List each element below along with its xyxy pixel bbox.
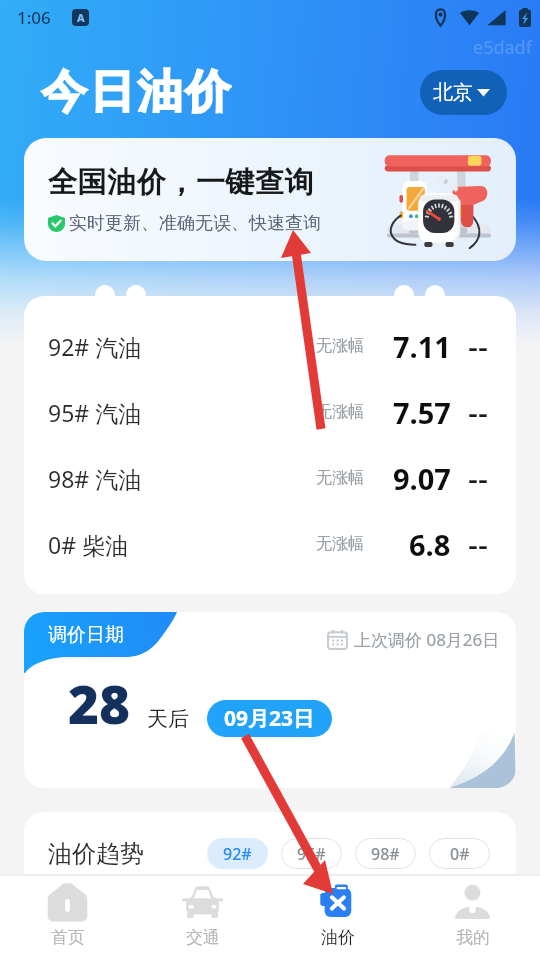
staticText: 我的 bbox=[456, 927, 490, 948]
button[interactable]: 全国油价，一键查询 bbox=[24, 138, 516, 261]
staticText: 09月23日 bbox=[224, 704, 315, 733]
button[interactable]: 95# 汽油 bbox=[48, 379, 492, 445]
button[interactable]: Home bbox=[0, 876, 135, 960]
staticText: -- bbox=[468, 391, 488, 433]
staticText: 无涨幅 bbox=[316, 402, 364, 422]
staticText: 油价 bbox=[321, 927, 355, 948]
staticText: 全国油价，一键查询 bbox=[48, 164, 315, 201]
staticText: 调价日期 bbox=[48, 623, 124, 647]
staticText: 7.57 bbox=[393, 393, 451, 432]
staticText: 油价趋势 bbox=[48, 839, 144, 869]
staticText: 98# 汽油 bbox=[48, 463, 142, 494]
staticText: 今日油价 bbox=[40, 64, 232, 120]
staticText: 无涨幅 bbox=[316, 336, 364, 356]
staticText: 92# 汽油 bbox=[48, 331, 142, 362]
button[interactable]: 09月23日 bbox=[207, 700, 332, 737]
button[interactable]: 98# 汽油 bbox=[48, 445, 492, 511]
staticText: 无涨幅 bbox=[316, 534, 364, 554]
staticText: 98# bbox=[371, 843, 400, 865]
staticText: 天后 bbox=[147, 706, 189, 732]
staticText: 上次调价 08月26日 bbox=[354, 628, 500, 651]
staticText: 北京 bbox=[433, 80, 473, 105]
button[interactable]: Profile bbox=[405, 876, 540, 960]
staticText: 7.11 bbox=[393, 327, 451, 366]
button[interactable]: 北京 bbox=[420, 70, 507, 115]
staticText: e5dadf bbox=[473, 35, 532, 60]
button[interactable]: 98# bbox=[355, 838, 416, 869]
button[interactable]: 92# 汽油 bbox=[48, 313, 492, 379]
staticText: 交通 bbox=[186, 927, 220, 948]
button[interactable]: 92# bbox=[207, 838, 268, 869]
staticText: -- bbox=[468, 325, 488, 367]
staticText: 9.07 bbox=[393, 459, 451, 498]
button[interactable]: Fuel price bbox=[270, 876, 405, 960]
button[interactable]: 0# bbox=[429, 838, 490, 869]
staticText: 0# bbox=[450, 843, 470, 865]
staticText: 95# bbox=[297, 843, 326, 865]
staticText: 1:06 bbox=[17, 6, 51, 29]
staticText: 实时更新、准确无误、快速查询 bbox=[69, 212, 321, 235]
button[interactable]: 95# bbox=[281, 838, 342, 869]
staticText: -- bbox=[468, 457, 488, 499]
staticText: 首页 bbox=[51, 927, 85, 948]
staticText: 0# 柴油 bbox=[48, 529, 128, 560]
button[interactable]: 0# 柴油 bbox=[48, 511, 492, 577]
staticText: A bbox=[77, 10, 85, 25]
staticText: 28 bbox=[68, 667, 131, 739]
staticText: 95# 汽油 bbox=[48, 397, 142, 428]
staticText: 6.8 bbox=[409, 525, 451, 564]
staticText: -- bbox=[468, 523, 488, 565]
staticText: 无涨幅 bbox=[316, 468, 364, 488]
staticText: 92# bbox=[223, 843, 252, 865]
button[interactable]: Traffic bbox=[135, 876, 270, 960]
